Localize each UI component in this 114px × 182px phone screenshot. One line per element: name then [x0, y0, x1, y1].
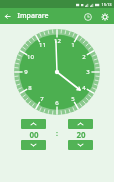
staticText: 10: [27, 53, 34, 61]
button[interactable]: Decrease hours: [21, 140, 46, 150]
staticText: 12: [54, 37, 61, 45]
staticText: 1: [71, 41, 75, 49]
button[interactable]: Settings: [98, 10, 111, 23]
staticText: 20: [76, 129, 86, 140]
staticText: 6: [55, 99, 59, 107]
staticText: :: [56, 129, 58, 139]
button[interactable]: Back: [0, 9, 14, 23]
button[interactable]: Increase minutes: [68, 119, 93, 129]
staticText: 8: [28, 84, 32, 92]
staticText: 15:13: [101, 2, 112, 7]
staticText: 2: [82, 53, 86, 61]
staticText: 11: [39, 41, 46, 49]
button[interactable]: Increase hours: [21, 119, 46, 129]
button[interactable]: History: [81, 10, 94, 23]
button[interactable]: Decrease minutes: [68, 140, 93, 150]
staticText: 9: [24, 68, 28, 76]
staticText: 7: [40, 95, 44, 103]
button[interactable]: Analog clock: [14, 29, 100, 115]
staticText: 00: [29, 129, 39, 140]
staticText: 3: [86, 68, 90, 76]
staticText: Imparare: [17, 11, 49, 21]
staticText: 5: [71, 95, 75, 103]
staticText: 4: [82, 84, 86, 92]
